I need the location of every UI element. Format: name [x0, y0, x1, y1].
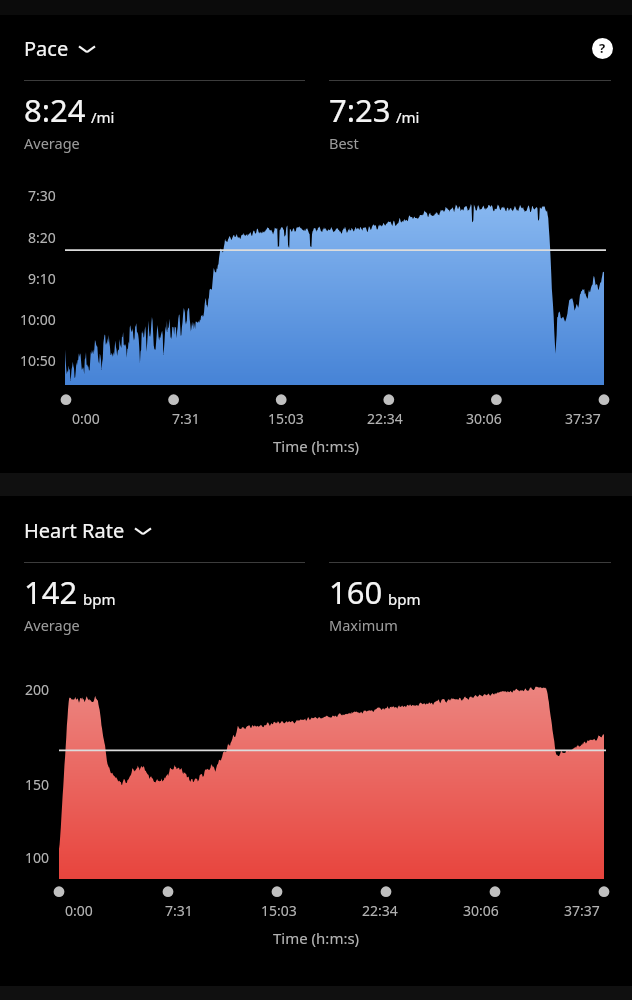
staticText: Time (h:m:s) [273, 928, 360, 948]
staticText: /mi [91, 107, 115, 127]
button[interactable]: Help [585, 31, 619, 65]
staticText: 9:10 [28, 269, 56, 288]
button[interactable]: 142 [24, 562, 305, 635]
staticText: ? [599, 39, 606, 57]
staticText: Heart Rate [24, 517, 125, 544]
staticText: 7:31 [172, 409, 200, 428]
staticText: 8:20 [28, 228, 56, 247]
staticText: 160 [329, 571, 383, 613]
staticText: 22:34 [367, 409, 403, 428]
staticText: Best [329, 133, 359, 153]
staticText: bpm [388, 589, 421, 609]
staticText: 15:03 [261, 901, 297, 920]
staticText: 37:37 [564, 901, 600, 920]
button[interactable]: 8:24 [24, 80, 305, 153]
staticText: 7:23 [329, 89, 391, 131]
staticText: 150 [25, 775, 50, 794]
staticText: 30:06 [463, 901, 499, 920]
staticText: Pace [24, 35, 69, 62]
staticText: 200 [25, 680, 50, 699]
staticText: 142 [24, 571, 78, 613]
staticText: 37:37 [565, 409, 601, 428]
button[interactable]: 7:23 [329, 80, 611, 153]
staticText: /mi [396, 107, 420, 127]
staticText: 22:34 [362, 901, 398, 920]
button[interactable]: Heart Rate [22, 514, 154, 547]
staticText: 0:00 [72, 409, 100, 428]
staticText: 8:24 [24, 89, 86, 131]
staticText: Maximum [329, 615, 398, 635]
staticText: bpm [83, 589, 116, 609]
staticText: 0:00 [65, 901, 93, 920]
staticText: 10:50 [20, 351, 56, 370]
button[interactable]: 160 [329, 562, 611, 635]
staticText: Average [24, 133, 80, 153]
staticText: 7:30 [28, 186, 56, 205]
button[interactable]: Pace [22, 32, 98, 65]
staticText: Time (h:m:s) [273, 436, 360, 456]
staticText: 100 [25, 848, 50, 867]
staticText: 15:03 [268, 409, 304, 428]
staticText: Average [24, 615, 80, 635]
staticText: 10:00 [20, 310, 56, 329]
staticText: 7:31 [165, 901, 193, 920]
staticText: 30:06 [466, 409, 502, 428]
